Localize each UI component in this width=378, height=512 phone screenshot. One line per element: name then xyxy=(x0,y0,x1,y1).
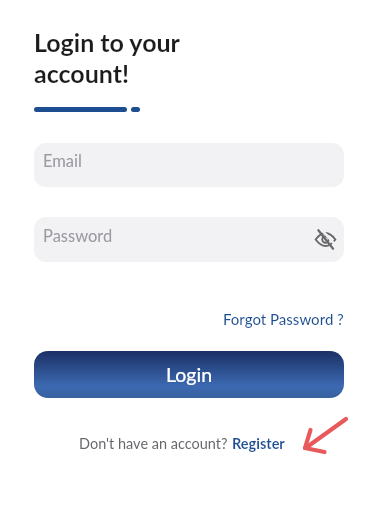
staticText: Email xyxy=(43,151,82,171)
button[interactable]: Forgot Password ? xyxy=(223,310,344,328)
staticText: Password xyxy=(43,226,113,246)
button[interactable] xyxy=(315,229,336,250)
staticText: Don't have an account? xyxy=(79,435,228,452)
staticText: Login xyxy=(166,363,213,386)
staticText: Login to your account! xyxy=(34,27,180,89)
button[interactable]: Login xyxy=(34,351,344,398)
button[interactable]: Email xyxy=(34,143,344,187)
button[interactable]: Register xyxy=(232,435,285,452)
button[interactable]: Password xyxy=(34,217,344,262)
